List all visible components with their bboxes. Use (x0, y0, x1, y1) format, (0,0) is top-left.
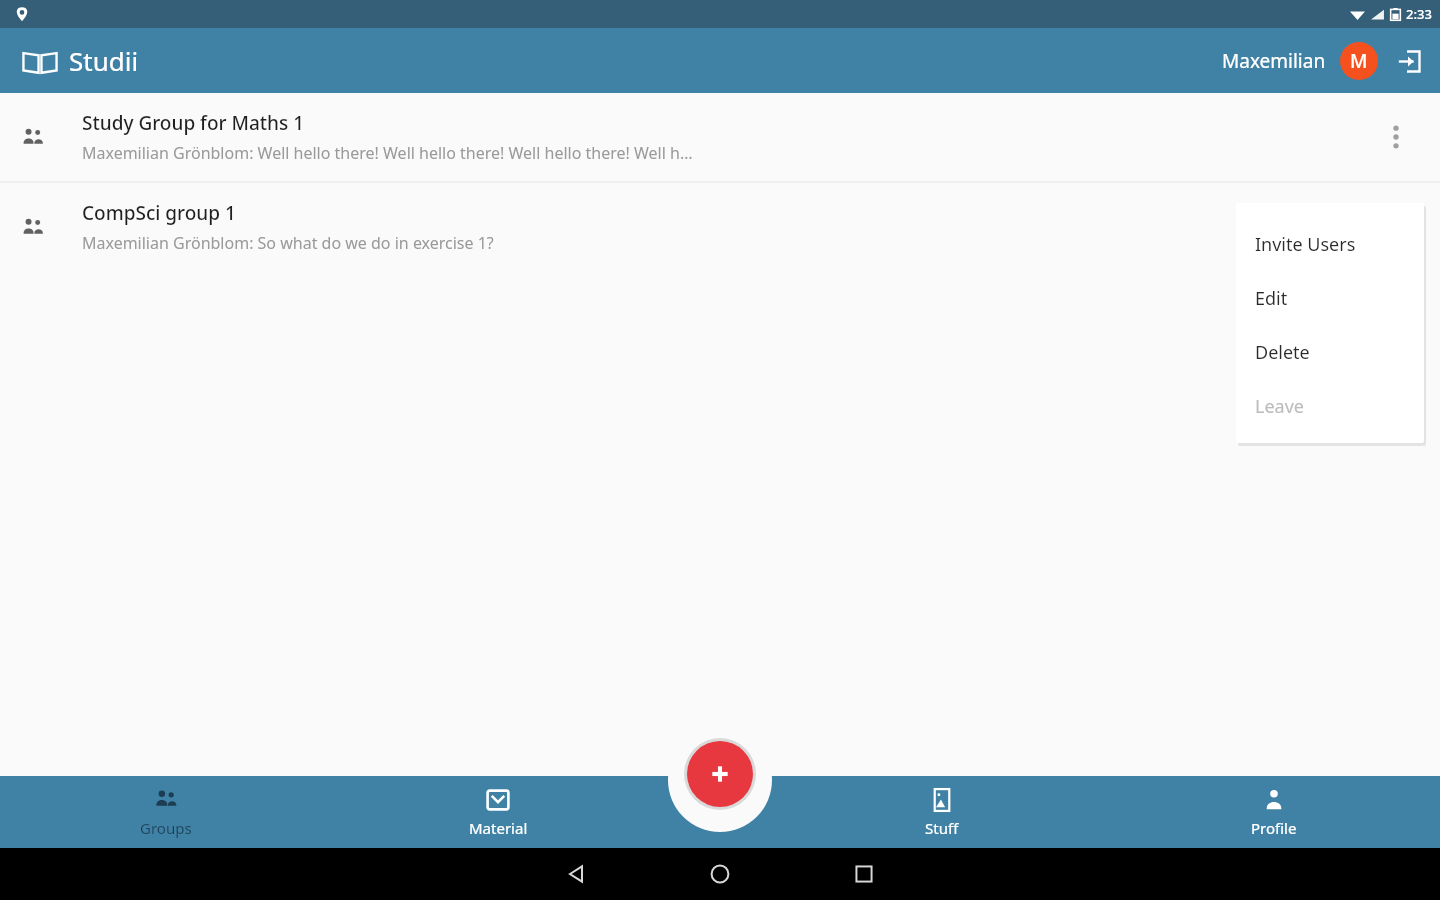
staticText: Maxemilian Grönblom: So what do we do in… (82, 232, 494, 254)
staticText: 2:33 (1406, 5, 1432, 23)
button[interactable]: Groups (0, 776, 332, 848)
staticText: Leave (1255, 394, 1304, 419)
button[interactable]: Delete (1236, 325, 1424, 379)
staticText: Maxemilian Grönblom: Well hello there! W… (82, 142, 693, 164)
button[interactable]: Log out (1392, 44, 1426, 78)
button[interactable]: CompSci group 1 (0, 183, 1440, 271)
button[interactable]: Invite Users (1236, 217, 1424, 271)
button: Leave (1236, 379, 1424, 433)
button[interactable]: Study Group for Maths 1 (0, 93, 1440, 181)
staticText: Invite Users (1255, 232, 1356, 257)
button[interactable]: Back (550, 848, 602, 900)
button[interactable]: Maxemilian (1222, 48, 1326, 74)
button[interactable]: Recent apps (838, 848, 890, 900)
button[interactable]: M (1340, 42, 1378, 80)
button[interactable]: Edit (1236, 271, 1424, 325)
button[interactable]: Home (694, 848, 746, 900)
staticText: CompSci group 1 (82, 200, 236, 226)
staticText: Groups (140, 818, 192, 838)
staticText: Studii (69, 43, 139, 78)
button[interactable]: More options (1372, 113, 1420, 161)
button[interactable]: Profile (1108, 776, 1440, 848)
staticText: M (1350, 48, 1368, 74)
staticText: Study Group for Maths 1 (82, 110, 305, 136)
button[interactable]: Material (332, 776, 664, 848)
staticText: Edit (1255, 286, 1288, 311)
staticText: Delete (1255, 340, 1310, 365)
staticText: Material (469, 818, 528, 838)
staticText: Profile (1251, 818, 1297, 838)
staticText: Stuff (925, 818, 959, 838)
button[interactable]: Stuff (776, 776, 1108, 848)
button[interactable]: Add (687, 741, 753, 807)
